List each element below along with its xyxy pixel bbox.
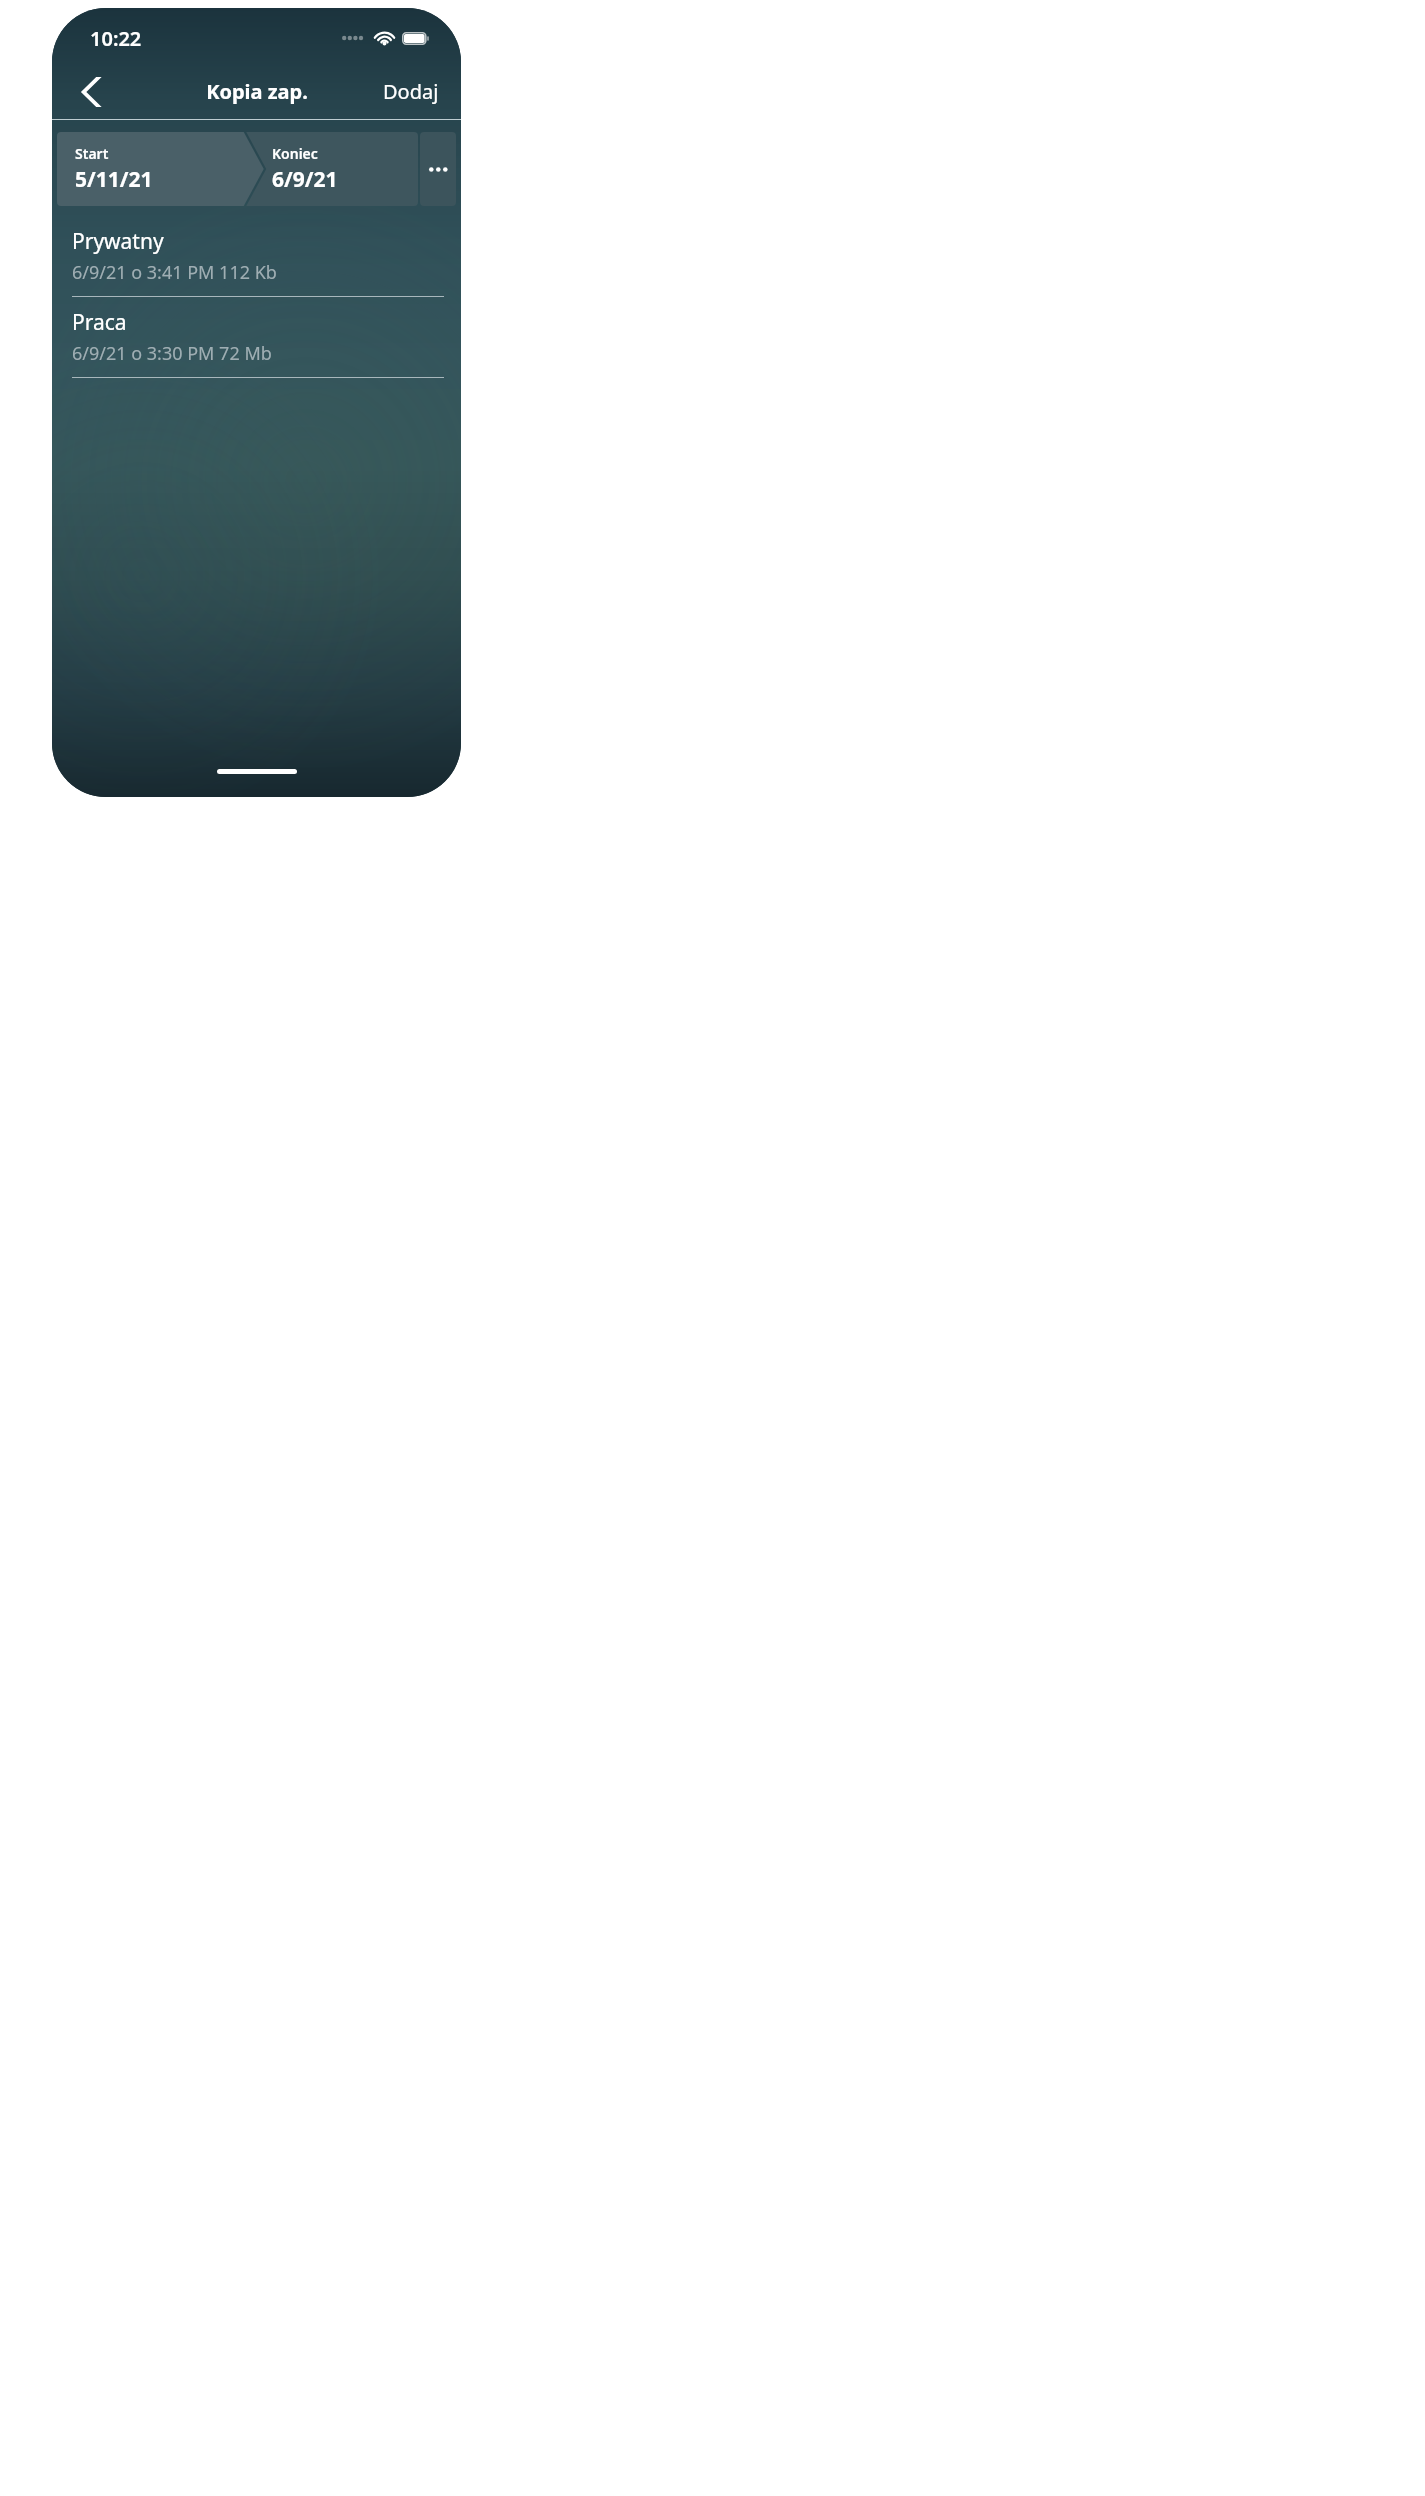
- staticText: Dodaj: [383, 78, 439, 105]
- staticText: 6/9/21 o 3:30 PM 72 Mb: [72, 341, 272, 366]
- button[interactable]: Start: [57, 132, 254, 206]
- button[interactable]: Back: [68, 66, 120, 118]
- staticText: Praca: [72, 308, 127, 337]
- staticText: 6/9/21: [272, 165, 338, 194]
- staticText: 6/9/21 o 3:41 PM 112 Kb: [72, 260, 277, 285]
- staticText: Kopia zap.: [206, 78, 308, 105]
- button[interactable]: Dodaj: [377, 70, 445, 113]
- button[interactable]: Praca: [52, 297, 461, 378]
- staticText: 10:22: [90, 25, 142, 52]
- button[interactable]: Prywatny: [52, 216, 461, 297]
- staticText: Prywatny: [72, 227, 164, 256]
- staticText: Koniec: [272, 144, 318, 163]
- staticText: 5/11/21: [75, 165, 153, 194]
- staticText: Start: [75, 144, 109, 163]
- button[interactable]: More options: [420, 132, 456, 206]
- button[interactable]: Koniec: [254, 132, 418, 206]
